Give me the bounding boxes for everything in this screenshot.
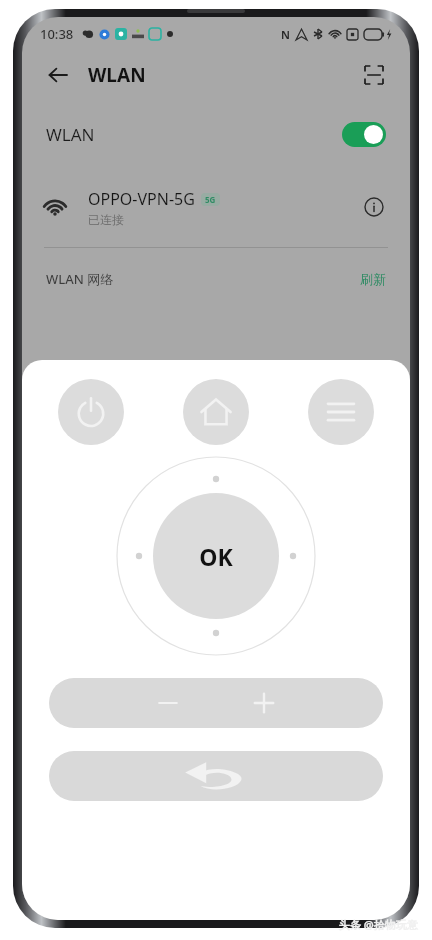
button[interactable]: OPPO-VPN-5G <box>22 179 410 235</box>
button[interactable]: WLAN <box>22 107 410 161</box>
staticText: N <box>281 27 290 42</box>
staticText: WLAN <box>88 62 146 88</box>
button[interactable]: Back <box>49 751 383 801</box>
button[interactable]: Home <box>183 379 249 445</box>
button[interactable]: Power <box>58 379 124 445</box>
button[interactable]: 刷新 <box>360 271 386 287</box>
staticText: 5G <box>205 194 216 205</box>
staticText: OK <box>199 541 233 572</box>
button[interactable]: Menu <box>308 379 374 445</box>
staticText: 头条 @拾物玩意 <box>339 917 418 932</box>
button[interactable]: Network details <box>360 193 388 221</box>
button[interactable]: Scan QR code <box>358 59 390 91</box>
button[interactable]: Back <box>42 59 74 91</box>
staticText: 已连接 <box>88 212 124 227</box>
button[interactable]: OK <box>153 493 279 619</box>
button[interactable]: Volume <box>49 678 383 728</box>
staticText: WLAN 网络 <box>46 270 114 288</box>
staticText: 10:38 <box>40 25 74 43</box>
staticText: OPPO-VPN-5G <box>88 188 195 210</box>
staticText: WLAN <box>46 123 95 146</box>
